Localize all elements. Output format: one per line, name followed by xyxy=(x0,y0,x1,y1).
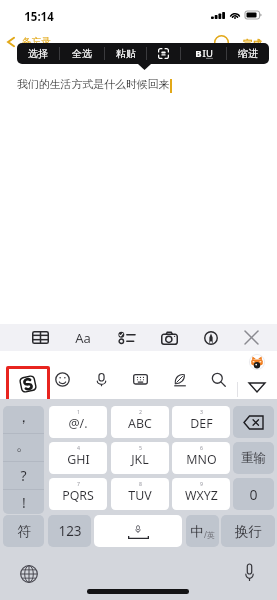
staticText: 备忘录 xyxy=(22,36,51,48)
button[interactable]: 7 xyxy=(49,478,107,510)
staticText: U xyxy=(206,47,213,60)
staticText: DEF xyxy=(190,415,213,432)
button[interactable]: 8 xyxy=(111,478,169,510)
button[interactable]: Sogou input xyxy=(9,369,47,399)
button[interactable]: Account xyxy=(249,354,265,370)
button[interactable]: B xyxy=(181,43,226,64)
other: Back xyxy=(7,37,15,47)
button[interactable]: Change language xyxy=(17,562,40,585)
staticText: 7 xyxy=(77,480,80,487)
staticText: 重输 xyxy=(241,450,266,466)
button[interactable]: 换行 xyxy=(221,515,275,547)
staticText: 缩进 xyxy=(238,47,258,60)
button[interactable]: 符 xyxy=(3,515,44,547)
staticText: ! xyxy=(22,493,26,512)
button[interactable]: 缩进 xyxy=(227,43,269,64)
staticText: 选择 xyxy=(28,47,48,60)
button[interactable]: 2 xyxy=(111,406,169,438)
staticText: 2 xyxy=(139,408,142,415)
button[interactable]: 6 xyxy=(172,442,230,474)
staticText: @/. xyxy=(68,415,88,432)
button[interactable]: Emoji xyxy=(52,366,72,392)
staticText: 1 xyxy=(77,408,80,415)
staticText: 符 xyxy=(17,523,31,540)
button[interactable]: ! xyxy=(3,490,44,514)
button[interactable]: 粘贴 xyxy=(105,43,146,64)
button[interactable]: 123 xyxy=(48,515,91,547)
staticText: 8 xyxy=(139,480,142,487)
staticText: 3 xyxy=(200,408,203,415)
button[interactable]: Checklist xyxy=(118,331,135,345)
button[interactable]: 0 xyxy=(233,478,274,510)
button[interactable]: 完成 xyxy=(243,38,262,50)
other: Scan document xyxy=(158,48,169,59)
button[interactable]: 重输 xyxy=(233,442,274,474)
staticText: 15:14 xyxy=(24,9,54,25)
button[interactable]: Markup xyxy=(204,331,218,345)
button[interactable]: Voice input xyxy=(91,366,111,392)
staticText: ABC xyxy=(128,415,152,432)
other: New note xyxy=(214,35,229,50)
button[interactable]: Search xyxy=(208,366,228,392)
button[interactable]: 9 xyxy=(172,478,230,510)
staticText: 中 xyxy=(190,523,204,540)
button[interactable]: Aa xyxy=(74,329,92,346)
button[interactable]: Keyboard xyxy=(130,366,150,392)
staticText: 全选 xyxy=(72,47,92,60)
staticText: 。 xyxy=(16,436,31,455)
staticText: ， xyxy=(16,408,31,427)
button[interactable]: ， xyxy=(3,406,44,433)
staticText: 123 xyxy=(58,522,82,540)
staticText: ? xyxy=(20,466,27,485)
button[interactable]: Dictation xyxy=(238,561,260,583)
button[interactable]: Space xyxy=(94,515,182,547)
button[interactable]: 中 xyxy=(186,515,219,547)
other: Delete xyxy=(244,416,263,429)
staticText: 4 xyxy=(77,444,80,451)
staticText: Aa xyxy=(75,329,91,346)
staticText: /英 xyxy=(204,529,215,540)
staticText: 粘贴 xyxy=(116,47,136,60)
staticText: PQRS xyxy=(62,487,94,504)
button[interactable]: 4 xyxy=(49,442,107,474)
button[interactable]: 1 xyxy=(49,406,107,438)
button[interactable]: Hide keyboard xyxy=(240,375,274,399)
button[interactable]: ? xyxy=(3,462,44,489)
staticText: 我们的生活方式是什么时候回来 xyxy=(17,78,170,92)
staticText: 6 xyxy=(200,444,203,451)
button[interactable]: Scan document xyxy=(147,43,180,64)
button[interactable]: 5 xyxy=(111,442,169,474)
button[interactable]: Handwriting xyxy=(169,366,189,392)
staticText: GHI xyxy=(67,451,90,468)
button[interactable]: 选择 xyxy=(17,43,59,64)
button[interactable]: 。 xyxy=(3,434,44,461)
staticText: B xyxy=(195,47,202,60)
staticText: WXYZ xyxy=(185,487,218,504)
button[interactable]: 全选 xyxy=(60,43,104,64)
button[interactable]: Camera xyxy=(161,331,178,345)
button[interactable]: Back xyxy=(7,35,51,48)
button[interactable]: Table xyxy=(32,331,49,344)
staticText: I xyxy=(202,47,206,60)
staticText: 0 xyxy=(249,485,258,504)
staticText: TUV xyxy=(128,487,152,504)
button[interactable]: Delete xyxy=(233,406,274,438)
staticText: JKL xyxy=(131,451,149,468)
button[interactable]: 3 xyxy=(172,406,230,438)
staticText: 9 xyxy=(200,480,203,487)
staticText: 换行 xyxy=(235,523,262,540)
button[interactable]: Close keyboard xyxy=(245,331,258,344)
staticText: MNO xyxy=(186,451,217,468)
staticText: 5 xyxy=(139,444,142,451)
